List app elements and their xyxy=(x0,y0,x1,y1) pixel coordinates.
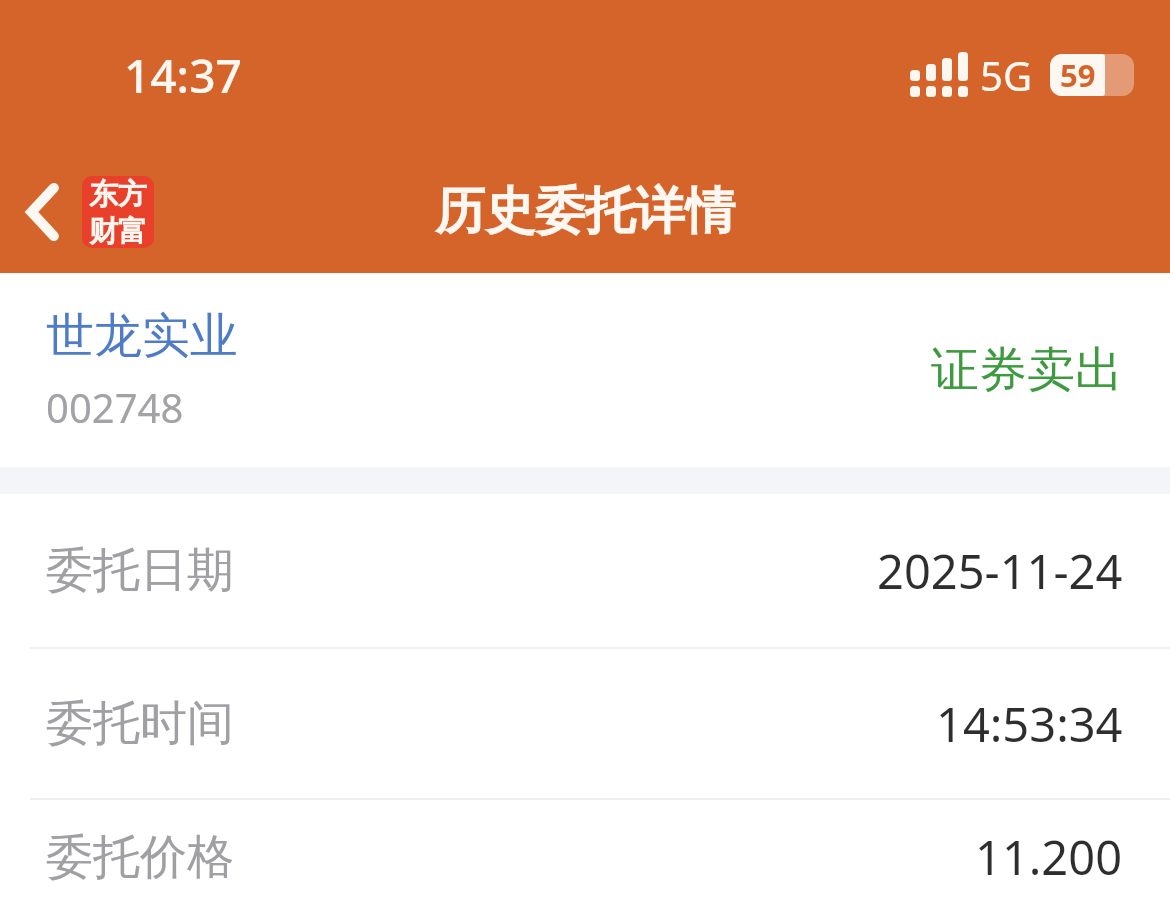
button[interactable]: 委托日期 xyxy=(0,494,1170,647)
staticText: 002748 xyxy=(46,380,184,434)
staticText: 委托时间 xyxy=(46,694,936,753)
staticText: 证券卖出 xyxy=(931,340,1123,400)
staticText: 东方 xyxy=(89,176,147,213)
staticText: 财富 xyxy=(89,213,147,248)
staticText: 委托价格 xyxy=(46,828,975,887)
staticText: 世龙实业 xyxy=(46,306,238,366)
staticText: 14:53:34 xyxy=(936,692,1123,756)
staticText: 5G xyxy=(980,48,1032,102)
button[interactable]: 世龙实业 xyxy=(0,273,1170,467)
staticText: 2025-11-24 xyxy=(877,539,1123,603)
button[interactable]: Back xyxy=(0,162,174,262)
button[interactable]: 委托价格 xyxy=(0,800,1170,914)
staticText: 11.200 xyxy=(975,825,1123,889)
staticText: 59 xyxy=(1060,54,1096,96)
staticText: 历史委托详情 xyxy=(435,180,735,243)
button[interactable]: 委托时间 xyxy=(0,649,1170,798)
staticText: 14:37 xyxy=(124,44,242,107)
staticText: 委托日期 xyxy=(46,541,877,600)
